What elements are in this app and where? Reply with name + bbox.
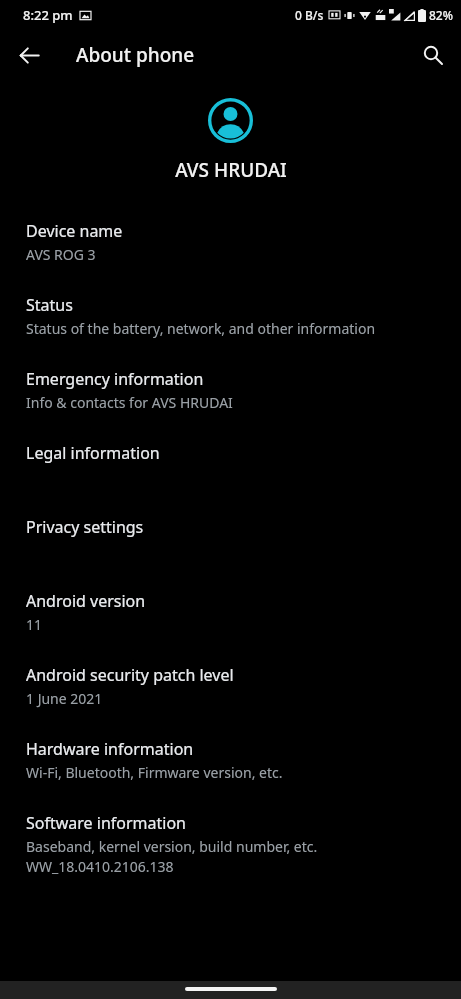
button[interactable]: Legal information [0, 436, 461, 510]
button[interactable]: Android version [0, 584, 461, 658]
button[interactable]: Back [7, 33, 51, 77]
staticText: 0 B/s [295, 7, 324, 23]
button[interactable]: Device name [0, 214, 461, 288]
staticText: 8:22 pm [23, 6, 73, 24]
button[interactable]: Status [0, 288, 461, 362]
staticText: Software information [26, 812, 186, 834]
button[interactable]: Hardware information [0, 732, 461, 806]
staticText: AVS ROG 3 [26, 245, 96, 264]
staticText: Baseband, kernel version, build number, … [26, 837, 318, 856]
staticText: Android security patch level [26, 664, 234, 686]
button[interactable]: Emergency information [0, 362, 461, 436]
staticText: Legal information [26, 442, 160, 464]
staticText: Android version [26, 590, 146, 612]
staticText: Wi-Fi, Bluetooth, Firmware version, etc. [26, 763, 283, 782]
staticText: Privacy settings [26, 516, 144, 538]
staticText: About phone [76, 42, 195, 68]
staticText: Status [26, 294, 73, 316]
staticText: Device name [26, 220, 123, 242]
staticText: Hardware information [26, 738, 194, 760]
staticText: Emergency information [26, 368, 204, 390]
button[interactable]: Android security patch level [0, 658, 461, 732]
staticText: AVS HRUDAI [175, 157, 287, 183]
staticText: 82% [429, 7, 453, 23]
staticText: Status of the battery, network, and othe… [26, 319, 376, 338]
button[interactable]: Search [411, 33, 455, 77]
staticText: WW_18.0410.2106.138 [26, 857, 174, 876]
button[interactable]: Software information [0, 806, 461, 894]
button[interactable]: Privacy settings [0, 510, 461, 584]
staticText: 1 June 2021 [26, 689, 103, 708]
staticText: Info & contacts for AVS HRUDAI [26, 393, 233, 412]
staticText: 11 [26, 615, 43, 634]
